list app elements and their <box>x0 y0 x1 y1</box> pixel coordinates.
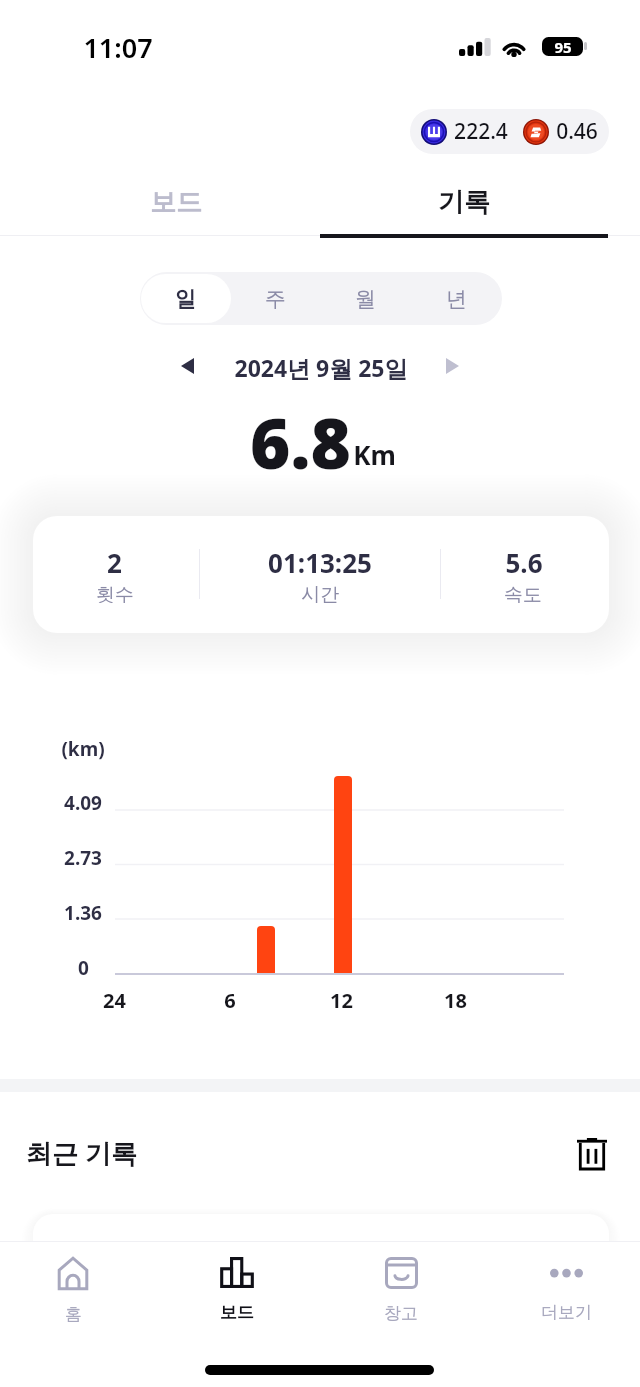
staticText: 5.6 <box>505 545 543 580</box>
button[interactable]: Delete records <box>571 1133 613 1175</box>
button[interactable]: 보드 <box>167 1250 307 1334</box>
button[interactable]: 최근 기록 <box>26 1133 137 1173</box>
button[interactable]: Previous day <box>167 346 207 386</box>
staticText: 01:13:25 <box>268 545 372 580</box>
staticText: Km <box>353 437 396 472</box>
button[interactable]: 년 <box>411 272 502 325</box>
staticText: 보드 <box>150 186 202 219</box>
staticText: 0 <box>78 955 89 981</box>
staticText: 0.46 <box>556 117 598 146</box>
staticText: 년 <box>446 286 467 312</box>
staticText: 일 <box>175 286 196 312</box>
staticText: 222.4 <box>454 117 508 146</box>
button[interactable]: 월 <box>320 272 411 325</box>
staticText: 2.73 <box>64 845 102 871</box>
button[interactable]: 홈 <box>3 1250 143 1334</box>
button[interactable]: 기록 <box>320 172 608 232</box>
staticText: 보드 <box>220 1302 254 1323</box>
staticText: 속도 <box>504 583 542 607</box>
staticText: 6.8 <box>250 395 351 475</box>
button[interactable]: 일 <box>140 272 230 325</box>
staticText: 홈 <box>65 1304 82 1325</box>
staticText: 12 <box>330 987 353 1014</box>
staticText: 더보기 <box>541 1302 592 1323</box>
staticText: 창고 <box>384 1303 418 1324</box>
staticText: 2024년 9월 25일 <box>234 352 408 383</box>
staticText: 18 <box>444 987 467 1014</box>
staticText: 95 <box>554 37 572 56</box>
staticText: 2 <box>107 545 122 580</box>
button[interactable]: 창고 <box>331 1250 471 1334</box>
button[interactable]: 더보기 <box>496 1250 636 1334</box>
staticText: 월 <box>355 286 376 312</box>
staticText: 최근 기록 <box>26 1135 137 1171</box>
button[interactable]: 222.4 <box>410 109 609 154</box>
staticText: (km) <box>61 736 105 762</box>
button[interactable]: 보드 <box>32 172 320 232</box>
button[interactable]: 주 <box>230 272 320 325</box>
staticText: 시간 <box>301 583 339 607</box>
staticText: 4.09 <box>64 790 102 816</box>
staticText: 주 <box>265 286 286 312</box>
staticText: 횟수 <box>96 583 134 607</box>
staticText: 24 <box>103 987 126 1014</box>
button[interactable]: Next day <box>432 346 472 386</box>
staticText: 6 <box>224 987 236 1014</box>
staticText: 11:07 <box>83 29 153 66</box>
staticText: 기록 <box>438 186 490 219</box>
staticText: 1.36 <box>64 900 102 926</box>
